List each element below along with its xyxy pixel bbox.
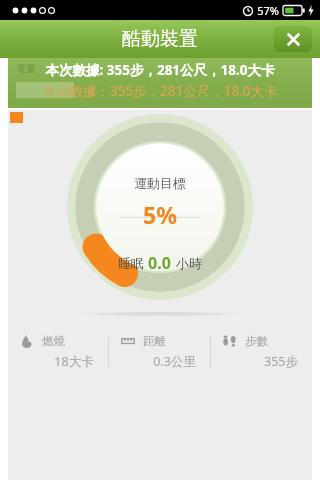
staticText: 睡眠 bbox=[118, 255, 144, 271]
button[interactable]: 步數 bbox=[211, 324, 312, 380]
staticText: 57% bbox=[257, 3, 279, 18]
button[interactable]: 距離 bbox=[109, 324, 210, 380]
button[interactable]: 電量 bbox=[8, 58, 312, 108]
staticText: 本次數據: 355步，281公尺，18.0大卡 bbox=[45, 61, 275, 79]
staticText: 運動目標 bbox=[134, 175, 186, 191]
staticText: 酷動裝置 bbox=[122, 27, 198, 51]
staticText: 0.3公里 bbox=[153, 353, 196, 370]
button[interactable]: 燃燒 bbox=[8, 324, 108, 380]
staticText: 18大卡 bbox=[54, 353, 94, 370]
button[interactable]: 關閉 bbox=[274, 26, 312, 52]
staticText: 0.0 bbox=[148, 252, 171, 274]
staticText: 距離 bbox=[143, 334, 166, 348]
staticText: 燃燒 bbox=[42, 334, 65, 348]
staticText: 電量 bbox=[16, 62, 36, 75]
staticText: 5% bbox=[143, 199, 177, 230]
staticText: 今日數據：355步，281公尺，18.0大卡 bbox=[42, 82, 278, 100]
staticText: 355步 bbox=[264, 353, 298, 370]
staticText: 步數 bbox=[245, 334, 268, 348]
staticText: 小時 bbox=[176, 255, 202, 271]
